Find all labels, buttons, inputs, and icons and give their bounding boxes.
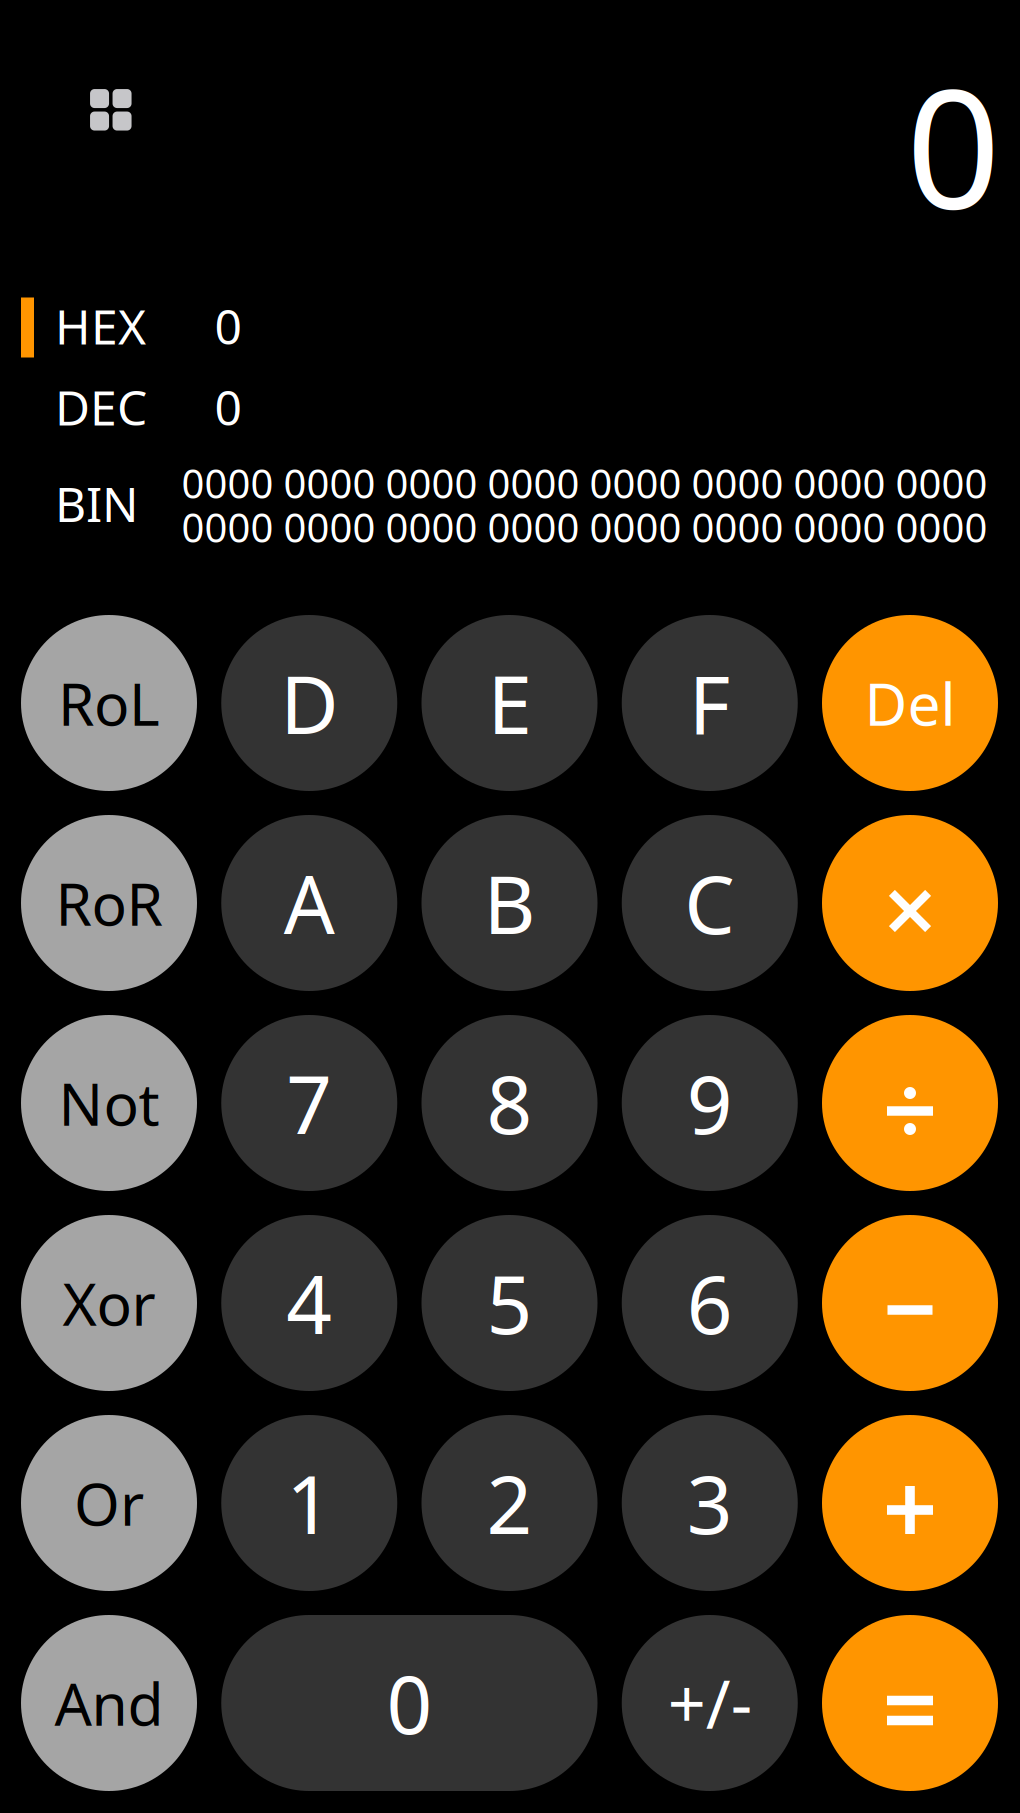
staticText: 1 [286, 1450, 332, 1556]
button[interactable]: Equals [822, 1615, 998, 1791]
button[interactable]: Not [21, 1015, 197, 1191]
staticText: 0 [214, 375, 241, 439]
staticText: D [280, 650, 338, 756]
button[interactable]: 9 [622, 1015, 798, 1191]
staticText: 2 [486, 1450, 532, 1556]
staticText: HEX [55, 294, 146, 358]
button[interactable]: RoR [21, 815, 197, 991]
button[interactable]: 3 [622, 1415, 798, 1591]
staticText: 0 [906, 34, 1001, 254]
button[interactable]: 2 [421, 1415, 597, 1591]
button[interactable]: E [421, 615, 597, 791]
button[interactable]: 5 [421, 1215, 597, 1391]
staticText: DEC [55, 375, 147, 439]
staticText: Or [74, 1464, 144, 1542]
staticText: Xor [62, 1264, 155, 1342]
staticText: 8 [486, 1050, 532, 1156]
button[interactable]: +/- [622, 1615, 798, 1791]
button[interactable]: D [221, 615, 397, 791]
button[interactable]: Divide [822, 1015, 998, 1191]
button[interactable]: RoL [21, 615, 197, 791]
staticText: 3 [687, 1450, 733, 1556]
button[interactable]: Xor [21, 1215, 197, 1391]
staticText: 7 [286, 1050, 332, 1156]
button[interactable]: C [622, 815, 798, 991]
staticText: B [483, 850, 535, 956]
button[interactable]: 8 [421, 1015, 597, 1191]
staticText: RoR [55, 864, 162, 942]
staticText: +/- [668, 1659, 752, 1747]
staticText: 0000 0000 0000 0000 0000 0000 0000 0000 [181, 500, 987, 553]
button[interactable]: 0 [221, 1615, 597, 1791]
button[interactable]: Del [822, 615, 998, 791]
button[interactable]: Multiply [822, 815, 998, 991]
staticText: Del [864, 664, 955, 742]
button[interactable]: 1 [221, 1415, 397, 1591]
staticText: 4 [286, 1250, 332, 1356]
staticText: 0 [386, 1650, 432, 1756]
staticText: F [689, 650, 731, 756]
button[interactable]: B [421, 815, 597, 991]
button[interactable]: And [21, 1615, 197, 1791]
staticText: 9 [687, 1050, 733, 1156]
staticText: 0 [214, 294, 241, 358]
button[interactable]: 7 [221, 1015, 397, 1191]
button[interactable]: 6 [622, 1215, 798, 1391]
staticText: C [684, 850, 735, 956]
button[interactable]: A [221, 815, 397, 991]
button[interactable]: Or [21, 1415, 197, 1591]
staticText: Not [58, 1064, 159, 1142]
staticText: And [54, 1664, 163, 1742]
staticText: 5 [486, 1250, 532, 1356]
staticText: 0000 0000 0000 0000 0000 0000 0000 0000 [181, 456, 987, 509]
staticText: E [487, 650, 531, 756]
button[interactable]: F [622, 615, 798, 791]
staticText: A [284, 850, 335, 956]
button[interactable]: Calculator mode [70, 69, 151, 150]
button[interactable]: 4 [221, 1215, 397, 1391]
button[interactable]: Add [822, 1415, 998, 1591]
staticText: BIN [55, 472, 138, 535]
button[interactable]: Subtract [822, 1215, 998, 1391]
staticText: RoL [58, 664, 160, 742]
staticText: 6 [687, 1250, 733, 1356]
